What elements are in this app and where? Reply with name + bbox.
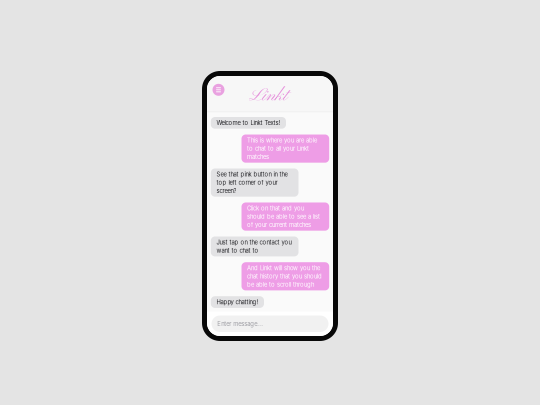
staticText: This is where you are able to chat to al…	[247, 137, 317, 160]
staticText: Linkt	[248, 84, 287, 107]
staticText: Just tap on the contact you want to chat…	[216, 239, 291, 254]
button[interactable]: Enter message...	[211, 315, 328, 332]
staticText: Enter message...	[217, 320, 263, 327]
staticText: Welcome to Linkt Texts!	[216, 119, 280, 126]
staticText: And Linkt will show you the chat history…	[247, 264, 322, 288]
button[interactable]: Menu	[212, 84, 224, 96]
staticText: Click on that and you should be able to …	[247, 205, 320, 228]
staticText: See that pink button in the top left cor…	[216, 171, 287, 194]
staticText: Happy chatting!	[216, 298, 258, 306]
